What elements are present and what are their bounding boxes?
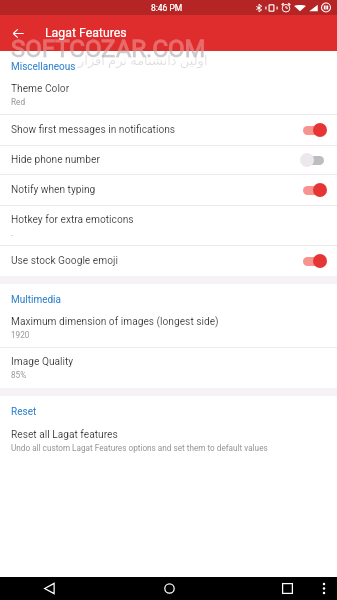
button[interactable]: Notify when typing xyxy=(0,175,337,205)
staticText: Reset all Lagat features xyxy=(11,429,118,441)
button[interactable]: Image Quality xyxy=(0,348,337,388)
button[interactable]: Back xyxy=(5,20,31,46)
staticText: Theme Color xyxy=(11,83,70,95)
button[interactable]: More options xyxy=(312,577,335,600)
button[interactable]: Back xyxy=(38,577,61,600)
staticText: Red xyxy=(11,97,26,107)
button[interactable]: Hotkey for extra emoticons xyxy=(0,206,337,245)
button[interactable]: Reset all Lagat features xyxy=(0,421,337,461)
staticText: 85% xyxy=(11,370,27,380)
staticText: Use stock Google emoji xyxy=(11,255,300,267)
staticText: Reset xyxy=(11,406,37,418)
button[interactable]: Maximum dimension of images (longest sid… xyxy=(0,309,337,347)
staticText: Notify when typing xyxy=(11,184,300,196)
staticText: SOFTCOZAR.COM xyxy=(11,51,206,63)
staticText: 8:46 PM xyxy=(151,3,183,13)
button[interactable]: Recents xyxy=(276,577,299,600)
button[interactable]: Theme Color xyxy=(0,76,337,114)
staticText: Hotkey for extra emoticons xyxy=(11,214,134,226)
button[interactable]: Home xyxy=(158,577,181,600)
staticText: Lagat Features xyxy=(45,26,127,40)
staticText: . xyxy=(11,228,14,238)
staticText: Image Quality xyxy=(11,356,74,368)
staticText: Hide phone number xyxy=(11,154,300,166)
staticText: 1920 xyxy=(11,330,30,340)
staticText: Multimedia xyxy=(11,294,61,306)
staticText: SOFTCOZAR.COM xyxy=(11,35,206,51)
staticText: اولین دانشنامه نرم افزار xyxy=(78,53,208,68)
staticText: Show first messages in notifications xyxy=(11,124,300,136)
button[interactable]: Use stock Google emoji xyxy=(0,246,337,276)
staticText: Miscellaneous xyxy=(11,61,76,73)
staticText: Undo all custom Lagat Features options a… xyxy=(11,443,268,453)
button[interactable]: Show first messages in notifications xyxy=(0,115,337,145)
button[interactable]: Hide phone number xyxy=(0,146,337,174)
staticText: Maximum dimension of images (longest sid… xyxy=(11,316,219,328)
